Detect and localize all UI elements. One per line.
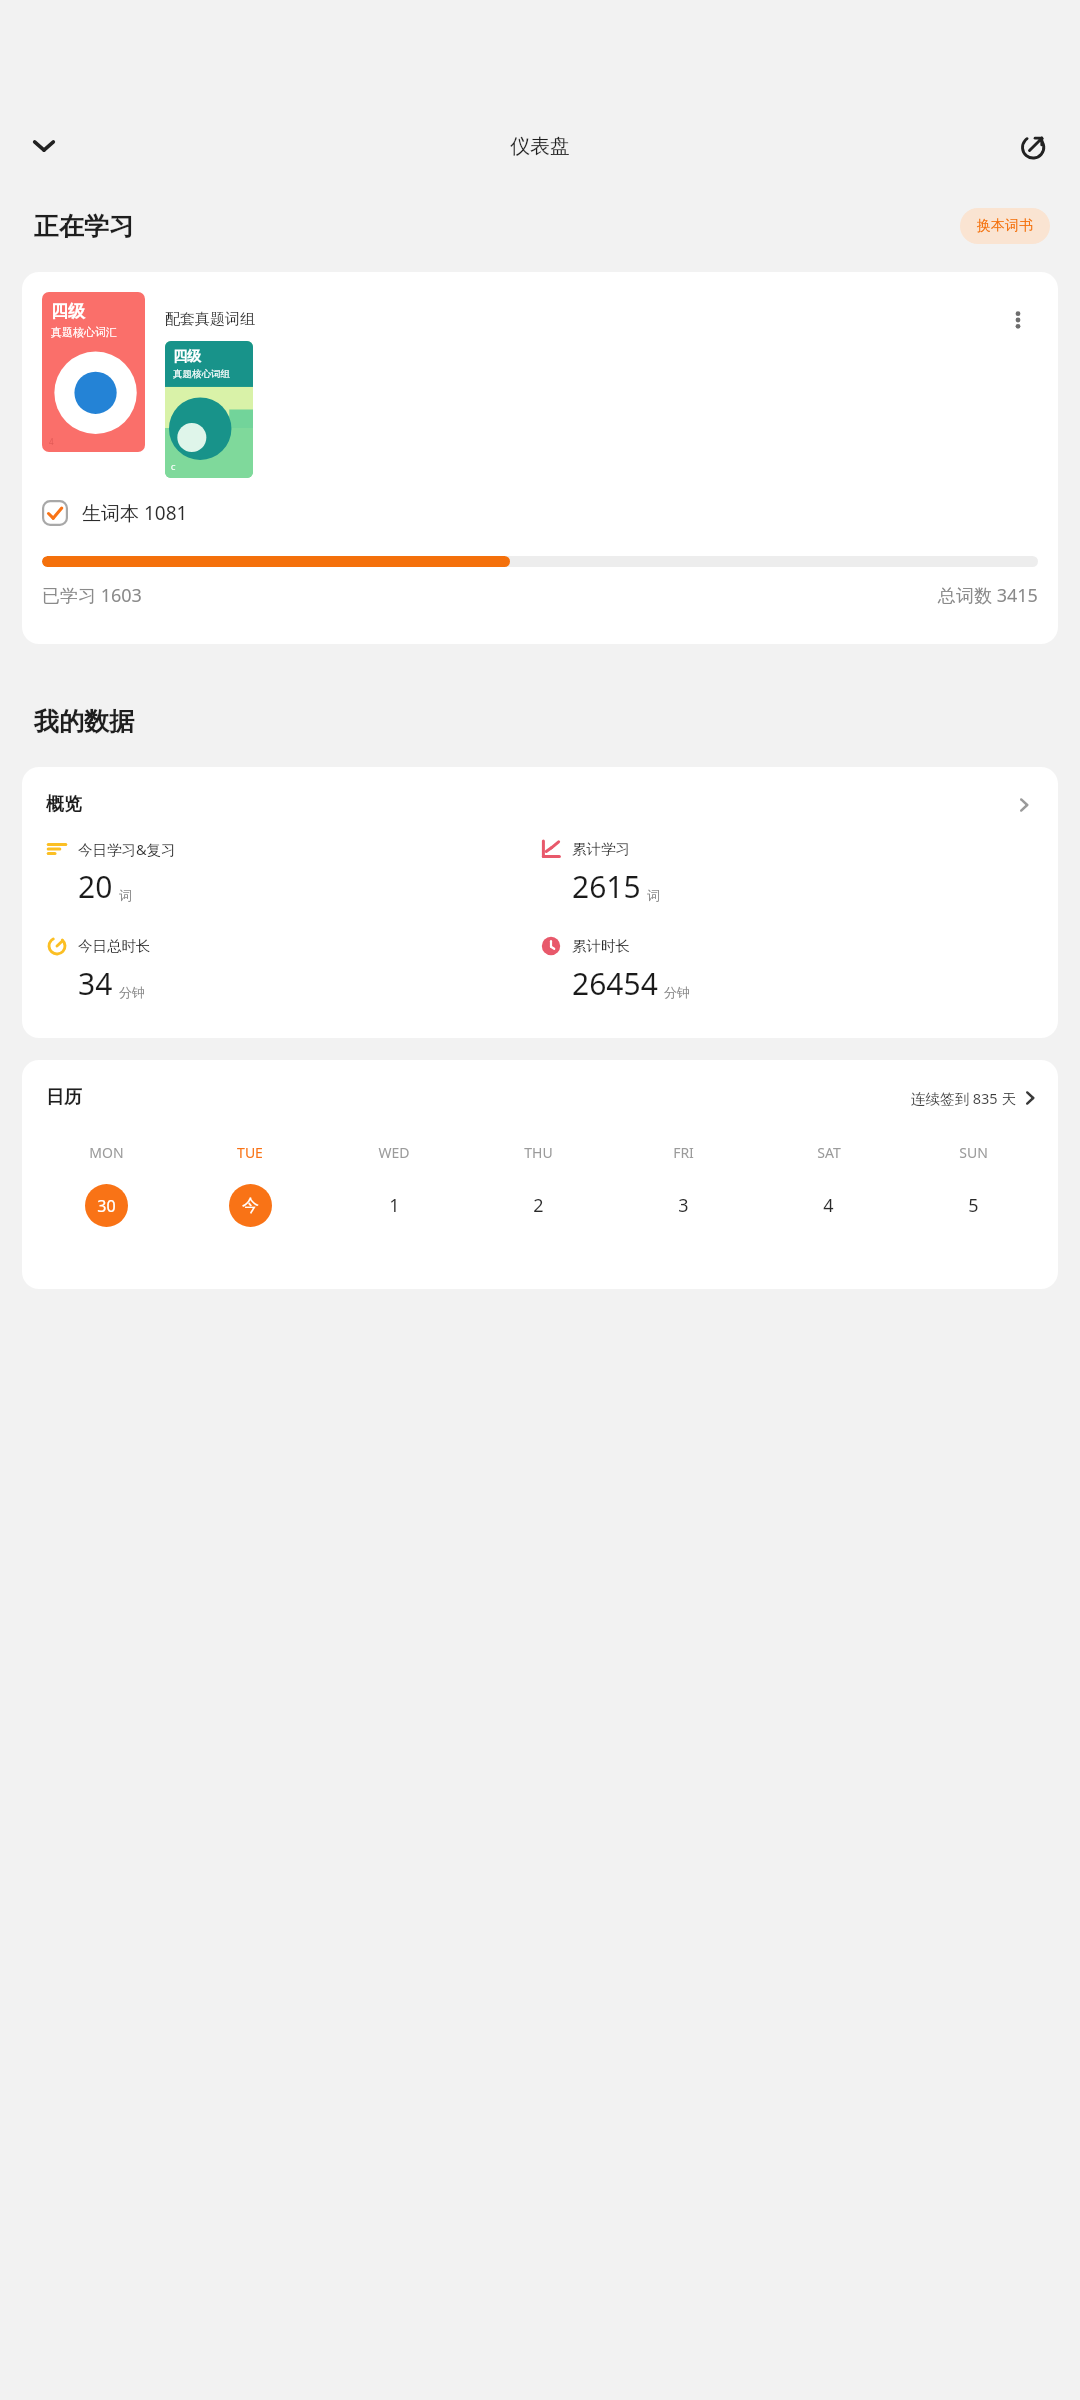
- staticText: 2615: [572, 866, 641, 907]
- button[interactable]: 3: [662, 1184, 705, 1227]
- staticText: 真题核心词组: [173, 368, 230, 380]
- staticText: 今: [242, 1195, 259, 1216]
- button[interactable]: 1: [373, 1184, 416, 1227]
- button[interactable]: 四级: [42, 292, 145, 452]
- staticText: SUN: [959, 1143, 988, 1162]
- staticText: 仪表盘: [510, 134, 570, 159]
- button[interactable]: 4: [807, 1184, 850, 1227]
- staticText: 分钟: [664, 984, 690, 1000]
- button[interactable]: More options: [998, 300, 1038, 340]
- staticText: 5: [968, 1193, 979, 1218]
- button[interactable]: 2: [517, 1184, 560, 1227]
- staticText: 正在学习: [34, 211, 134, 242]
- staticText: 词: [119, 887, 132, 903]
- staticText: 词: [647, 887, 660, 903]
- staticText: 分钟: [119, 984, 145, 1000]
- button[interactable]: 生词本 1081: [42, 496, 188, 530]
- staticText: 4: [49, 436, 54, 447]
- staticText: 2: [533, 1193, 544, 1218]
- staticText: 日历: [46, 1086, 82, 1109]
- staticText: THU: [524, 1143, 553, 1162]
- staticText: SAT: [817, 1143, 841, 1162]
- staticText: 换本词书: [977, 217, 1033, 235]
- staticText: 20: [78, 866, 113, 907]
- staticText: 四级: [51, 301, 85, 322]
- staticText: 配套真题词组: [165, 310, 255, 329]
- button[interactable]: Collapse: [18, 120, 70, 172]
- staticText: 我的数据: [34, 706, 134, 737]
- staticText: C: [171, 463, 176, 473]
- staticText: 真题核心词汇: [51, 325, 117, 339]
- staticText: MON: [89, 1143, 124, 1162]
- staticText: 累计时长: [572, 937, 630, 955]
- staticText: 26454: [572, 963, 658, 1004]
- staticText: 1: [389, 1193, 400, 1218]
- staticText: 生词本 1081: [82, 500, 188, 526]
- button[interactable]: 四级: [165, 341, 253, 478]
- button[interactable]: 5: [952, 1184, 995, 1227]
- staticText: 已学习 1603: [42, 583, 142, 608]
- staticText: 累计学习: [572, 840, 630, 858]
- staticText: 4: [823, 1193, 834, 1218]
- button[interactable]: 四级: [22, 272, 1058, 644]
- button[interactable]: 换本词书: [960, 208, 1050, 244]
- staticText: 30: [97, 1195, 116, 1217]
- button[interactable]: 日历: [22, 1060, 1058, 1289]
- staticText: 概览: [46, 793, 82, 816]
- staticText: 今日学习&复习: [78, 839, 176, 859]
- button[interactable]: 概览: [22, 767, 1058, 1038]
- staticText: 四级: [173, 348, 201, 366]
- staticText: FRI: [673, 1143, 694, 1162]
- button[interactable]: 今: [229, 1184, 272, 1227]
- staticText: 34: [78, 963, 113, 1004]
- button[interactable]: Share: [1008, 120, 1060, 172]
- button[interactable]: 30: [85, 1184, 128, 1227]
- staticText: TUE: [237, 1143, 263, 1162]
- staticText: WED: [378, 1143, 410, 1162]
- staticText: 总词数 3415: [938, 583, 1038, 608]
- staticText: 连续签到 835 天: [911, 1088, 1016, 1108]
- staticText: 3: [678, 1193, 689, 1218]
- staticText: 今日总时长: [78, 937, 151, 955]
